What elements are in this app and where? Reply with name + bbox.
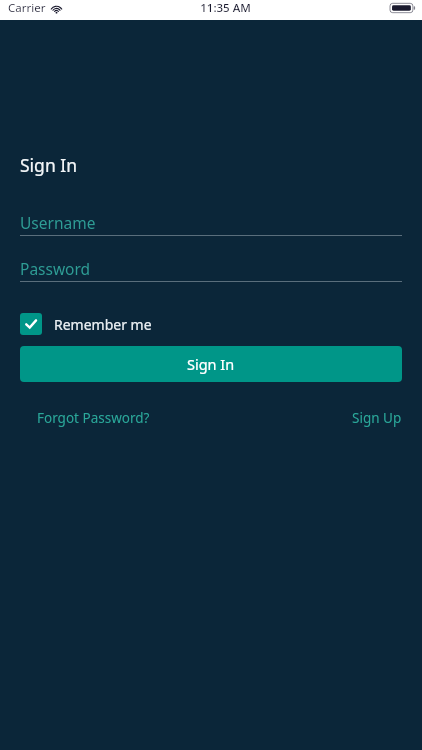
staticText: Sign In <box>20 153 77 177</box>
button[interactable]: Sign Up <box>352 409 402 427</box>
button[interactable]: Username <box>20 210 402 235</box>
button[interactable]: Sign In <box>20 346 402 382</box>
staticText: Forgot Password? <box>37 409 150 427</box>
button[interactable]: Remember me <box>20 313 152 335</box>
staticText: 11:35 AM <box>200 0 251 16</box>
staticText: Remember me <box>54 315 152 334</box>
staticText: Sign Up <box>352 409 402 427</box>
button[interactable]: Password <box>20 256 402 281</box>
staticText: Carrier <box>8 0 46 16</box>
staticText: Sign In <box>187 354 235 374</box>
staticText: Username <box>20 212 96 233</box>
button[interactable]: Forgot Password? <box>37 409 150 427</box>
staticText: Password <box>20 258 91 279</box>
